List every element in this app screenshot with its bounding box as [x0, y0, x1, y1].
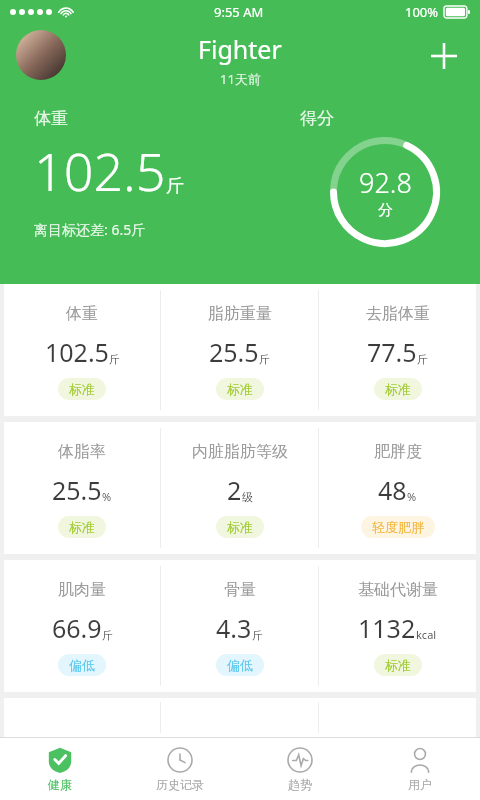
staticText: 标准 [69, 381, 95, 397]
staticText: 基础代谢量 [358, 580, 438, 600]
staticText: 健康 [48, 777, 72, 792]
staticText: 11天前 [220, 70, 261, 88]
staticText: 斤 [417, 352, 428, 366]
staticText: % [102, 489, 112, 504]
staticText: 100% [405, 3, 439, 21]
staticText: 92.8 [359, 164, 412, 201]
button[interactable]: 趋势 [240, 738, 360, 800]
staticText: 9:55 AM [214, 3, 264, 21]
staticText: 77.5 [367, 335, 417, 369]
staticText: 偏低 [227, 657, 253, 673]
staticText: 斤 [102, 628, 113, 642]
staticText: 标准 [227, 519, 253, 535]
staticText: 4.3 [216, 611, 252, 645]
button[interactable]: 用户 [360, 738, 480, 800]
button[interactable]: 脂肪重量 [161, 284, 318, 416]
button[interactable]: Add [422, 34, 466, 78]
button[interactable]: 标准 [374, 654, 422, 676]
button[interactable]: 轻度肥胖 [361, 516, 435, 538]
staticText: 标准 [69, 519, 95, 535]
staticText: 历史记录 [156, 777, 204, 792]
staticText: 斤 [252, 628, 263, 642]
button[interactable]: 肥胖度 [319, 422, 476, 554]
button[interactable]: 健康 [0, 738, 120, 800]
staticText: 趋势 [288, 777, 312, 792]
button[interactable]: 去脂体重 [319, 284, 476, 416]
button[interactable]: 标准 [216, 378, 264, 400]
staticText: 25.5 [209, 335, 259, 369]
staticText: 斤 [166, 175, 184, 198]
staticText: 66.9 [52, 611, 102, 645]
staticText: 分 [378, 201, 393, 220]
staticText: 轻度肥胖 [372, 519, 424, 535]
staticText: 肌肉量 [58, 580, 106, 600]
staticText: 脂肪重量 [208, 304, 272, 324]
staticText: 2 [227, 473, 242, 507]
staticText: 得分 [300, 108, 334, 129]
staticText: 级 [242, 490, 253, 504]
button[interactable]: 肌肉量 [4, 560, 160, 692]
staticText: 骨量 [224, 580, 256, 600]
button[interactable]: 基础代谢量 [319, 560, 476, 692]
staticText: 偏低 [69, 657, 95, 673]
staticText: % [407, 489, 417, 504]
button[interactable]: 标准 [58, 378, 106, 400]
staticText: 肥胖度 [374, 442, 422, 462]
button[interactable]: Profile avatar [16, 30, 66, 80]
staticText: 25.5 [52, 473, 102, 507]
button[interactable]: 内脏脂肪等级 [161, 422, 318, 554]
staticText: 体脂率 [58, 442, 106, 462]
staticText: 去脂体重 [366, 304, 430, 324]
button[interactable]: 体重 [4, 284, 160, 416]
button[interactable]: 骨量 [161, 560, 318, 692]
button[interactable]: 标准 [216, 516, 264, 538]
staticText: 102.5 [45, 335, 109, 369]
button[interactable]: 标准 [58, 516, 106, 538]
staticText: 用户 [408, 777, 432, 792]
staticText: 48 [378, 473, 407, 507]
staticText: 斤 [109, 352, 120, 366]
staticText: 斤 [259, 352, 270, 366]
staticText: 标准 [385, 381, 411, 397]
staticText: 体重 [34, 108, 68, 129]
staticText: 标准 [385, 657, 411, 673]
button[interactable]: 偏低 [58, 654, 106, 676]
staticText: 102.5 [34, 135, 166, 206]
button[interactable]: 标准 [374, 378, 422, 400]
staticText: 内脏脂肪等级 [192, 442, 288, 462]
button[interactable]: 偏低 [216, 654, 264, 676]
staticText: 1132 [358, 611, 416, 645]
staticText: 体重 [66, 304, 98, 324]
staticText: Fighter [198, 32, 282, 66]
staticText: 离目标还差: 6.5斤 [34, 220, 146, 239]
button[interactable]: 历史记录 [120, 738, 240, 800]
button[interactable]: 体脂率 [4, 422, 160, 554]
staticText: 标准 [227, 381, 253, 397]
staticText: kcal [416, 627, 437, 642]
